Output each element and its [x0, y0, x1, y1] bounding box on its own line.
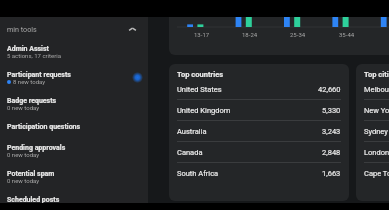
button[interactable]: London	[364, 142, 389, 162]
staticText: South Africa	[177, 169, 219, 178]
staticText: min tools	[7, 25, 37, 33]
button[interactable]: Participation questions	[0, 119, 148, 140]
staticText: 0 new today	[7, 177, 40, 184]
staticText: 8 new today	[13, 78, 46, 85]
staticText: 5,330	[322, 106, 341, 115]
button[interactable]: Melbourne	[364, 79, 389, 99]
staticText: 18-24	[242, 31, 258, 38]
staticText: Melbourne	[364, 85, 389, 94]
button[interactable]: Cape Town	[364, 163, 389, 183]
staticText: Top countries	[177, 70, 224, 79]
staticText: United Kingdom	[177, 106, 231, 115]
button[interactable]: Australia	[177, 121, 341, 141]
staticText: United States	[177, 85, 222, 94]
staticText: Potential spam	[7, 170, 55, 178]
staticText: Cape Town	[364, 169, 389, 178]
staticText: 1,663	[322, 169, 341, 178]
button[interactable]: United Kingdom	[177, 100, 341, 120]
staticText: Badge requests	[7, 97, 57, 105]
staticText: 13-17	[194, 31, 210, 38]
staticText: Admin Assist	[7, 45, 49, 53]
staticText: London	[364, 148, 389, 157]
button[interactable]: Potential spam	[0, 166, 148, 192]
staticText: 0 new today	[7, 151, 40, 158]
staticText: 0 new today	[7, 104, 40, 111]
staticText: 5 actions, 17 criteria	[7, 52, 61, 59]
staticText: 25-34	[290, 31, 306, 38]
other: Collapse Admin tools	[128, 25, 137, 34]
staticText: Sydney	[364, 127, 388, 136]
button[interactable]: New York	[364, 100, 389, 120]
staticText: 42,660	[318, 85, 341, 94]
staticText: Participation questions	[7, 123, 81, 131]
button[interactable]: Scheduled posts	[0, 192, 148, 203]
button[interactable]: Canada	[177, 142, 341, 162]
button[interactable]: Pending approvals	[0, 140, 148, 166]
staticText: Australia	[177, 127, 207, 136]
button[interactable]: United States	[177, 79, 341, 99]
staticText: Top cities	[364, 70, 389, 79]
staticText: New York	[364, 106, 389, 115]
button[interactable]: Participant requests	[0, 67, 148, 93]
staticText: Canada	[177, 148, 203, 157]
button[interactable]: Admin Assist	[0, 41, 148, 67]
button[interactable]: Badge requests	[0, 93, 148, 119]
staticText: 2,848	[322, 148, 341, 157]
staticText: Pending approvals	[7, 144, 66, 152]
staticText: Participant requests	[7, 71, 71, 79]
staticText: Scheduled posts	[7, 196, 60, 203]
button[interactable]: Sydney	[364, 121, 389, 141]
button[interactable]: South Africa	[177, 163, 341, 183]
button[interactable]: min tools	[0, 17, 148, 41]
staticText: 3,243	[322, 127, 341, 136]
staticText: 35-44	[339, 31, 355, 38]
